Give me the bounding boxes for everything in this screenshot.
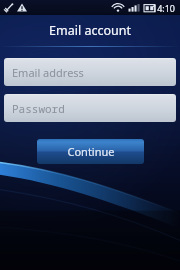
- staticText: Email account: [49, 22, 131, 39]
- staticText: Continue: [67, 144, 115, 159]
- button[interactable]: Password: [4, 94, 176, 122]
- button[interactable]: Email address: [4, 58, 176, 86]
- staticText: 14:10: [152, 2, 176, 14]
- button[interactable]: Continue: [37, 139, 144, 164]
- staticText: Email address: [12, 65, 84, 80]
- staticText: Password: [12, 101, 65, 116]
